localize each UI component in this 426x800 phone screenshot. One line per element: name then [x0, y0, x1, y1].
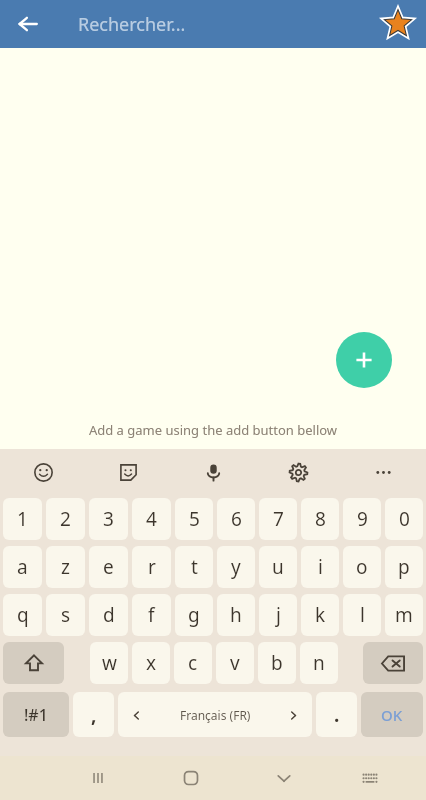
- button[interactable]: j: [259, 594, 297, 636]
- button[interactable]: 2: [46, 498, 85, 540]
- button[interactable]: v: [216, 642, 254, 684]
- button[interactable]: n: [300, 642, 338, 684]
- button[interactable]: More options: [341, 449, 426, 495]
- staticText: s: [61, 602, 71, 628]
- button[interactable]: !#1: [3, 692, 69, 737]
- button[interactable]: 7: [259, 498, 297, 540]
- button[interactable]: 8: [301, 498, 339, 540]
- button[interactable]: r: [132, 546, 171, 588]
- staticText: g: [188, 602, 200, 628]
- staticText: j: [276, 602, 281, 628]
- button[interactable]: 0: [385, 498, 423, 540]
- button[interactable]: 3: [89, 498, 128, 540]
- staticText: v: [230, 650, 240, 676]
- staticText: q: [17, 602, 29, 628]
- button[interactable]: ,: [73, 692, 114, 737]
- button[interactable]: Backspace: [363, 642, 423, 684]
- staticText: x: [146, 650, 157, 676]
- staticText: u: [272, 554, 284, 580]
- button[interactable]: .: [316, 692, 357, 737]
- button[interactable]: k: [301, 594, 339, 636]
- button[interactable]: d: [89, 594, 128, 636]
- staticText: b: [271, 650, 283, 676]
- button[interactable]: Add game: [336, 332, 392, 388]
- staticText: 1: [17, 506, 28, 532]
- button[interactable]: 4: [132, 498, 171, 540]
- button[interactable]: Voice input: [171, 449, 256, 495]
- staticText: 9: [357, 506, 368, 532]
- staticText: m: [395, 602, 413, 628]
- staticText: !#1: [24, 704, 48, 726]
- staticText: n: [313, 650, 325, 676]
- staticText: o: [356, 554, 368, 580]
- button[interactable]: w: [90, 642, 128, 684]
- button[interactable]: Home: [144, 756, 237, 800]
- button[interactable]: Hide keyboard: [237, 756, 330, 800]
- button[interactable]: f: [132, 594, 171, 636]
- staticText: f: [148, 602, 155, 628]
- button[interactable]: z: [46, 546, 85, 588]
- staticText: .: [334, 702, 340, 728]
- staticText: Add a game using the add button bellow: [0, 421, 426, 439]
- staticText: 2: [60, 506, 71, 532]
- staticText: a: [17, 554, 28, 580]
- staticText: i: [318, 554, 323, 580]
- button[interactable]: c: [174, 642, 212, 684]
- staticText: 4: [146, 506, 157, 532]
- button[interactable]: a: [3, 546, 42, 588]
- button[interactable]: Recent apps: [51, 756, 144, 800]
- button[interactable]: h: [217, 594, 255, 636]
- button[interactable]: 1: [3, 498, 42, 540]
- staticText: 6: [231, 506, 242, 532]
- button[interactable]: e: [89, 546, 128, 588]
- staticText: p: [398, 554, 410, 580]
- button[interactable]: q: [3, 594, 42, 636]
- staticText: OK: [381, 705, 403, 725]
- staticText: h: [230, 602, 242, 628]
- button[interactable]: x: [132, 642, 170, 684]
- button[interactable]: Change keyboard: [330, 756, 409, 800]
- staticText: r: [148, 554, 156, 580]
- button[interactable]: Back: [8, 4, 48, 44]
- button[interactable]: Emoji: [0, 449, 86, 495]
- button[interactable]: 5: [175, 498, 213, 540]
- staticText: 7: [273, 506, 284, 532]
- button[interactable]: g: [175, 594, 213, 636]
- button[interactable]: u: [259, 546, 297, 588]
- staticText: 0: [399, 506, 410, 532]
- button[interactable]: 9: [343, 498, 381, 540]
- staticText: e: [103, 554, 114, 580]
- staticText: 3: [103, 506, 114, 532]
- staticText: Français (FR): [180, 707, 251, 723]
- button[interactable]: Stickers: [86, 449, 171, 495]
- staticText: t: [191, 554, 198, 580]
- staticText: z: [61, 554, 70, 580]
- button[interactable]: Settings: [256, 449, 341, 495]
- button[interactable]: Français (FR): [118, 692, 312, 737]
- staticText: w: [102, 650, 117, 676]
- button[interactable]: b: [258, 642, 296, 684]
- button[interactable]: t: [175, 546, 213, 588]
- staticText: 5: [189, 506, 200, 532]
- button[interactable]: OK: [361, 692, 423, 737]
- button[interactable]: 6: [217, 498, 255, 540]
- staticText: ,: [91, 702, 97, 728]
- button[interactable]: Shift: [3, 642, 64, 684]
- button[interactable]: o: [343, 546, 381, 588]
- staticText: y: [231, 554, 241, 580]
- button[interactable]: y: [217, 546, 255, 588]
- button[interactable]: p: [385, 546, 423, 588]
- staticText: l: [360, 602, 365, 628]
- button[interactable]: m: [385, 594, 423, 636]
- staticText: c: [188, 650, 198, 676]
- button[interactable]: Favorites: [378, 4, 418, 44]
- button[interactable]: s: [46, 594, 85, 636]
- staticText: k: [315, 602, 326, 628]
- button[interactable]: i: [301, 546, 339, 588]
- staticText: 8: [315, 506, 326, 532]
- staticText: d: [103, 602, 115, 628]
- staticText: Rechercher...: [78, 12, 186, 37]
- button[interactable]: l: [343, 594, 381, 636]
